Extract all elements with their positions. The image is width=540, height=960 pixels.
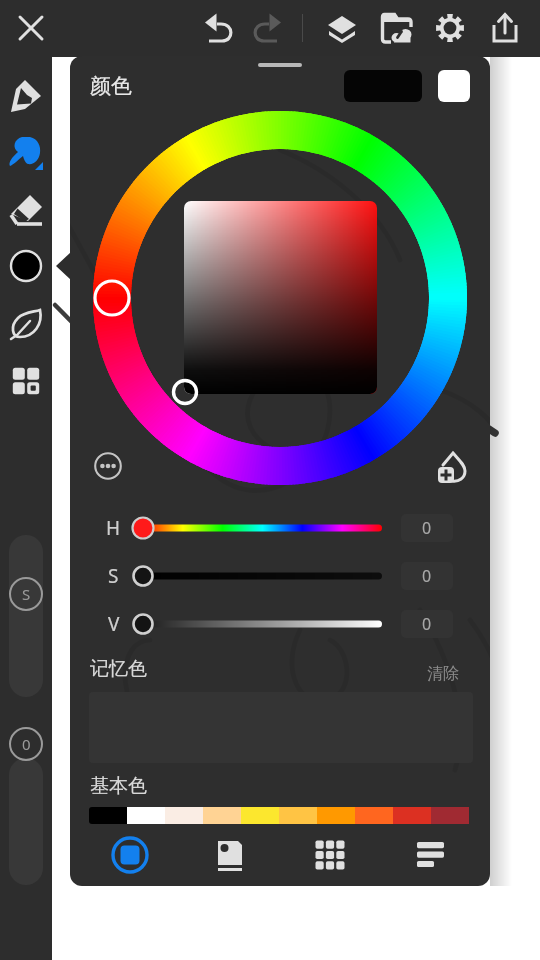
staticText: 0 (422, 565, 432, 587)
button[interactable]: Layers (322, 8, 362, 48)
button[interactable]: More options (90, 448, 126, 484)
staticText: 0 (422, 517, 432, 539)
button[interactable]: S slider (132, 552, 382, 600)
button[interactable]: Redo (247, 8, 287, 48)
button[interactable]: Share (485, 8, 525, 48)
button[interactable]: Settings (430, 8, 470, 48)
button[interactable]: V value (401, 610, 453, 638)
button[interactable]: Opacity (9, 758, 43, 885)
button[interactable]: Eraser (6, 190, 46, 230)
button[interactable]: Color wheel (106, 831, 154, 879)
button[interactable]: Current color (344, 70, 422, 102)
button[interactable]: Menu (6, 361, 46, 401)
staticText: V (108, 611, 120, 637)
button[interactable]: H value (401, 514, 453, 542)
staticText: 0 (22, 734, 31, 754)
staticText: 清除 (427, 664, 459, 684)
staticText: H (106, 515, 121, 541)
button[interactable]: Secondary color (438, 70, 470, 102)
button[interactable]: Color (6, 246, 46, 286)
button[interactable]: Brush size (9, 535, 43, 697)
staticText: 0 (422, 613, 432, 635)
button[interactable]: Leaf (6, 304, 46, 344)
button[interactable]: H slider (132, 504, 382, 552)
button[interactable]: 清除 (427, 664, 459, 684)
button[interactable]: Add color (435, 448, 471, 484)
button[interactable]: Palette (206, 831, 254, 879)
button[interactable]: Undo (199, 8, 239, 48)
button[interactable]: S value (401, 562, 453, 590)
button[interactable]: Open file (377, 8, 417, 48)
button[interactable]: List (406, 831, 454, 879)
button[interactable]: V slider (132, 600, 382, 648)
staticText: 基本色 (90, 774, 147, 798)
button[interactable]: Brush (6, 132, 46, 172)
staticText: S (22, 584, 31, 604)
staticText: 颜色 (90, 73, 132, 99)
button[interactable]: Collapse panel (52, 250, 72, 282)
button[interactable]: Close (11, 8, 51, 48)
staticText: 记忆色 (90, 657, 147, 681)
button[interactable]: Grid (306, 831, 354, 879)
button[interactable]: Saturation and brightness (184, 201, 377, 394)
button[interactable]: Pen (6, 76, 46, 116)
staticText: S (108, 563, 119, 589)
